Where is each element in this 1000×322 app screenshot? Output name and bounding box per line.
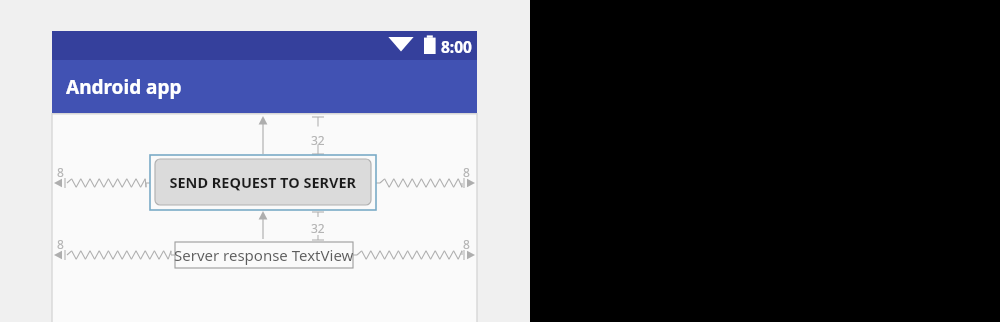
other: Wifi signal	[388, 33, 414, 55]
button[interactable]	[155, 159, 371, 205]
button[interactable]	[175, 242, 353, 268]
button[interactable]: Android app title bar	[52, 60, 477, 113]
other: Battery	[420, 33, 440, 55]
